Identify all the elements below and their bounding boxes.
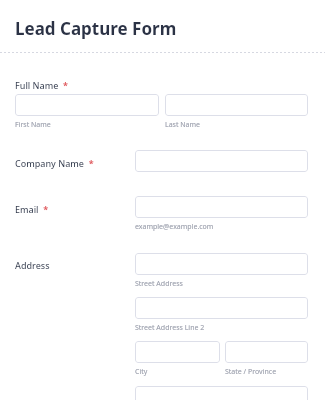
staticText: Full Name * [15,79,68,91]
button[interactable]: State / Province [225,341,308,363]
staticText: State / Province [225,367,277,377]
button[interactable]: City [135,341,220,363]
staticText: Address [15,259,50,271]
button[interactable]: First Name [15,94,159,116]
staticText: example@example.com [135,222,214,232]
staticText: City [135,367,148,377]
button[interactable]: Postal / Zip Code [135,386,308,400]
staticText: Last Name [165,120,201,130]
button[interactable]: Street Address [135,253,308,275]
button[interactable]: Street Address Line 2 [135,297,308,319]
staticText: Email * [15,203,49,215]
staticText: Street Address [135,279,183,289]
button[interactable]: Company Name [135,150,308,172]
staticText: Street Address Line 2 [135,323,205,333]
button[interactable]: Last Name [165,94,308,116]
staticText: Lead Capture Form [15,17,177,40]
staticText: First Name [15,120,51,130]
staticText: Company Name * [15,157,94,169]
button[interactable]: Email [135,196,308,218]
